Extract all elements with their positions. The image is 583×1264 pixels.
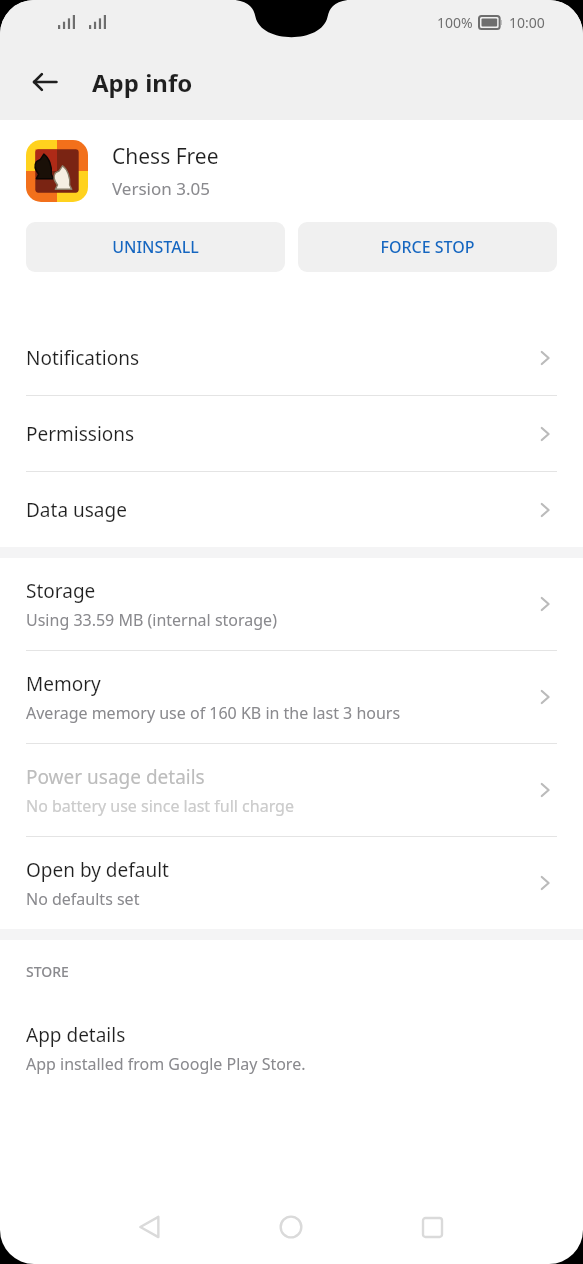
staticText: Version 3.05 <box>112 177 210 200</box>
staticText: 10:00 <box>509 13 545 32</box>
staticText: STORE <box>26 962 69 981</box>
staticText: Average memory use of 160 KB in the last… <box>26 702 401 724</box>
staticText: No battery use since last full charge <box>26 795 294 817</box>
staticText: Notifications <box>26 345 140 371</box>
button[interactable]: UNINSTALL <box>26 222 285 272</box>
button[interactable]: Back <box>122 1199 178 1255</box>
staticText: Chess Free <box>112 142 219 171</box>
button[interactable]: Home <box>263 1199 319 1255</box>
button[interactable]: App details <box>0 1002 583 1094</box>
staticText: Data usage <box>26 497 127 523</box>
button[interactable]: FORCE STOP <box>298 222 557 272</box>
staticText: No defaults set <box>26 888 140 910</box>
button[interactable]: Back <box>20 57 70 107</box>
button[interactable]: Recent apps <box>404 1199 460 1255</box>
staticText: App installed from Google Play Store. <box>26 1053 306 1075</box>
staticText: App info <box>92 66 193 99</box>
button[interactable]: Data usage <box>0 472 583 547</box>
staticText: Permissions <box>26 421 135 447</box>
staticText: Open by default <box>26 857 169 883</box>
staticText: App details <box>26 1022 126 1048</box>
staticText: 100% <box>437 13 473 32</box>
button[interactable]: Open by default <box>0 837 583 929</box>
staticText: Memory <box>26 671 101 697</box>
button[interactable]: Storage <box>0 558 583 650</box>
button[interactable]: Notifications <box>0 320 583 395</box>
staticText: UNINSTALL <box>112 236 199 258</box>
staticText: Power usage details <box>26 764 205 790</box>
staticText: Storage <box>26 578 96 604</box>
staticText: FORCE STOP <box>380 236 475 258</box>
button[interactable]: Memory <box>0 651 583 743</box>
button[interactable]: Power usage details <box>0 744 583 836</box>
button[interactable]: Permissions <box>0 396 583 471</box>
staticText: Using 33.59 MB (internal storage) <box>26 609 277 631</box>
